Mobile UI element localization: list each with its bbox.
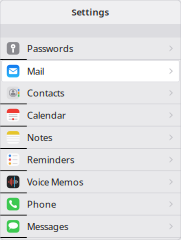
staticText: Mail <box>27 65 44 77</box>
staticText: Messages <box>27 220 68 233</box>
button[interactable]: Mail <box>0 60 181 82</box>
button[interactable]: Notes <box>0 127 181 149</box>
staticText: Voice Memos <box>27 176 83 188</box>
staticText: Phone <box>27 198 56 210</box>
button[interactable]: Calendar <box>0 104 181 127</box>
staticText: Notes <box>27 131 52 144</box>
staticText: Settings <box>71 6 109 18</box>
button[interactable]: Passwords <box>0 38 181 60</box>
button[interactable]: Reminders <box>0 149 181 171</box>
button[interactable]: Phone <box>0 193 181 216</box>
button[interactable]: Voice Memos <box>0 171 181 193</box>
button[interactable]: Messages <box>0 216 181 238</box>
button[interactable]: Contacts <box>0 82 181 104</box>
staticText: Reminders <box>27 153 74 166</box>
staticText: Contacts <box>27 87 64 99</box>
staticText: Calendar <box>27 109 66 121</box>
staticText: Passwords <box>27 42 73 55</box>
